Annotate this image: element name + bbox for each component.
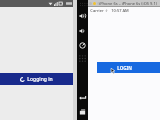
button[interactable]: Rotate [77,40,88,51]
button[interactable]: Overview [77,106,88,117]
button[interactable]: Volume up [77,10,88,21]
staticText: iPhone 6s – iPhone 6s (iOS 9.1) [99,1,157,6]
staticText: 10:57 AM [111,8,129,13]
staticText: Logging in [27,76,53,83]
button[interactable]: LOGIN [97,62,160,73]
staticText: Carrier [90,8,104,13]
staticText: LOGIN [117,65,132,71]
button[interactable]: Logging in [0,73,73,85]
button[interactable]: Back [77,92,88,103]
button[interactable]: Volume down [77,25,88,36]
